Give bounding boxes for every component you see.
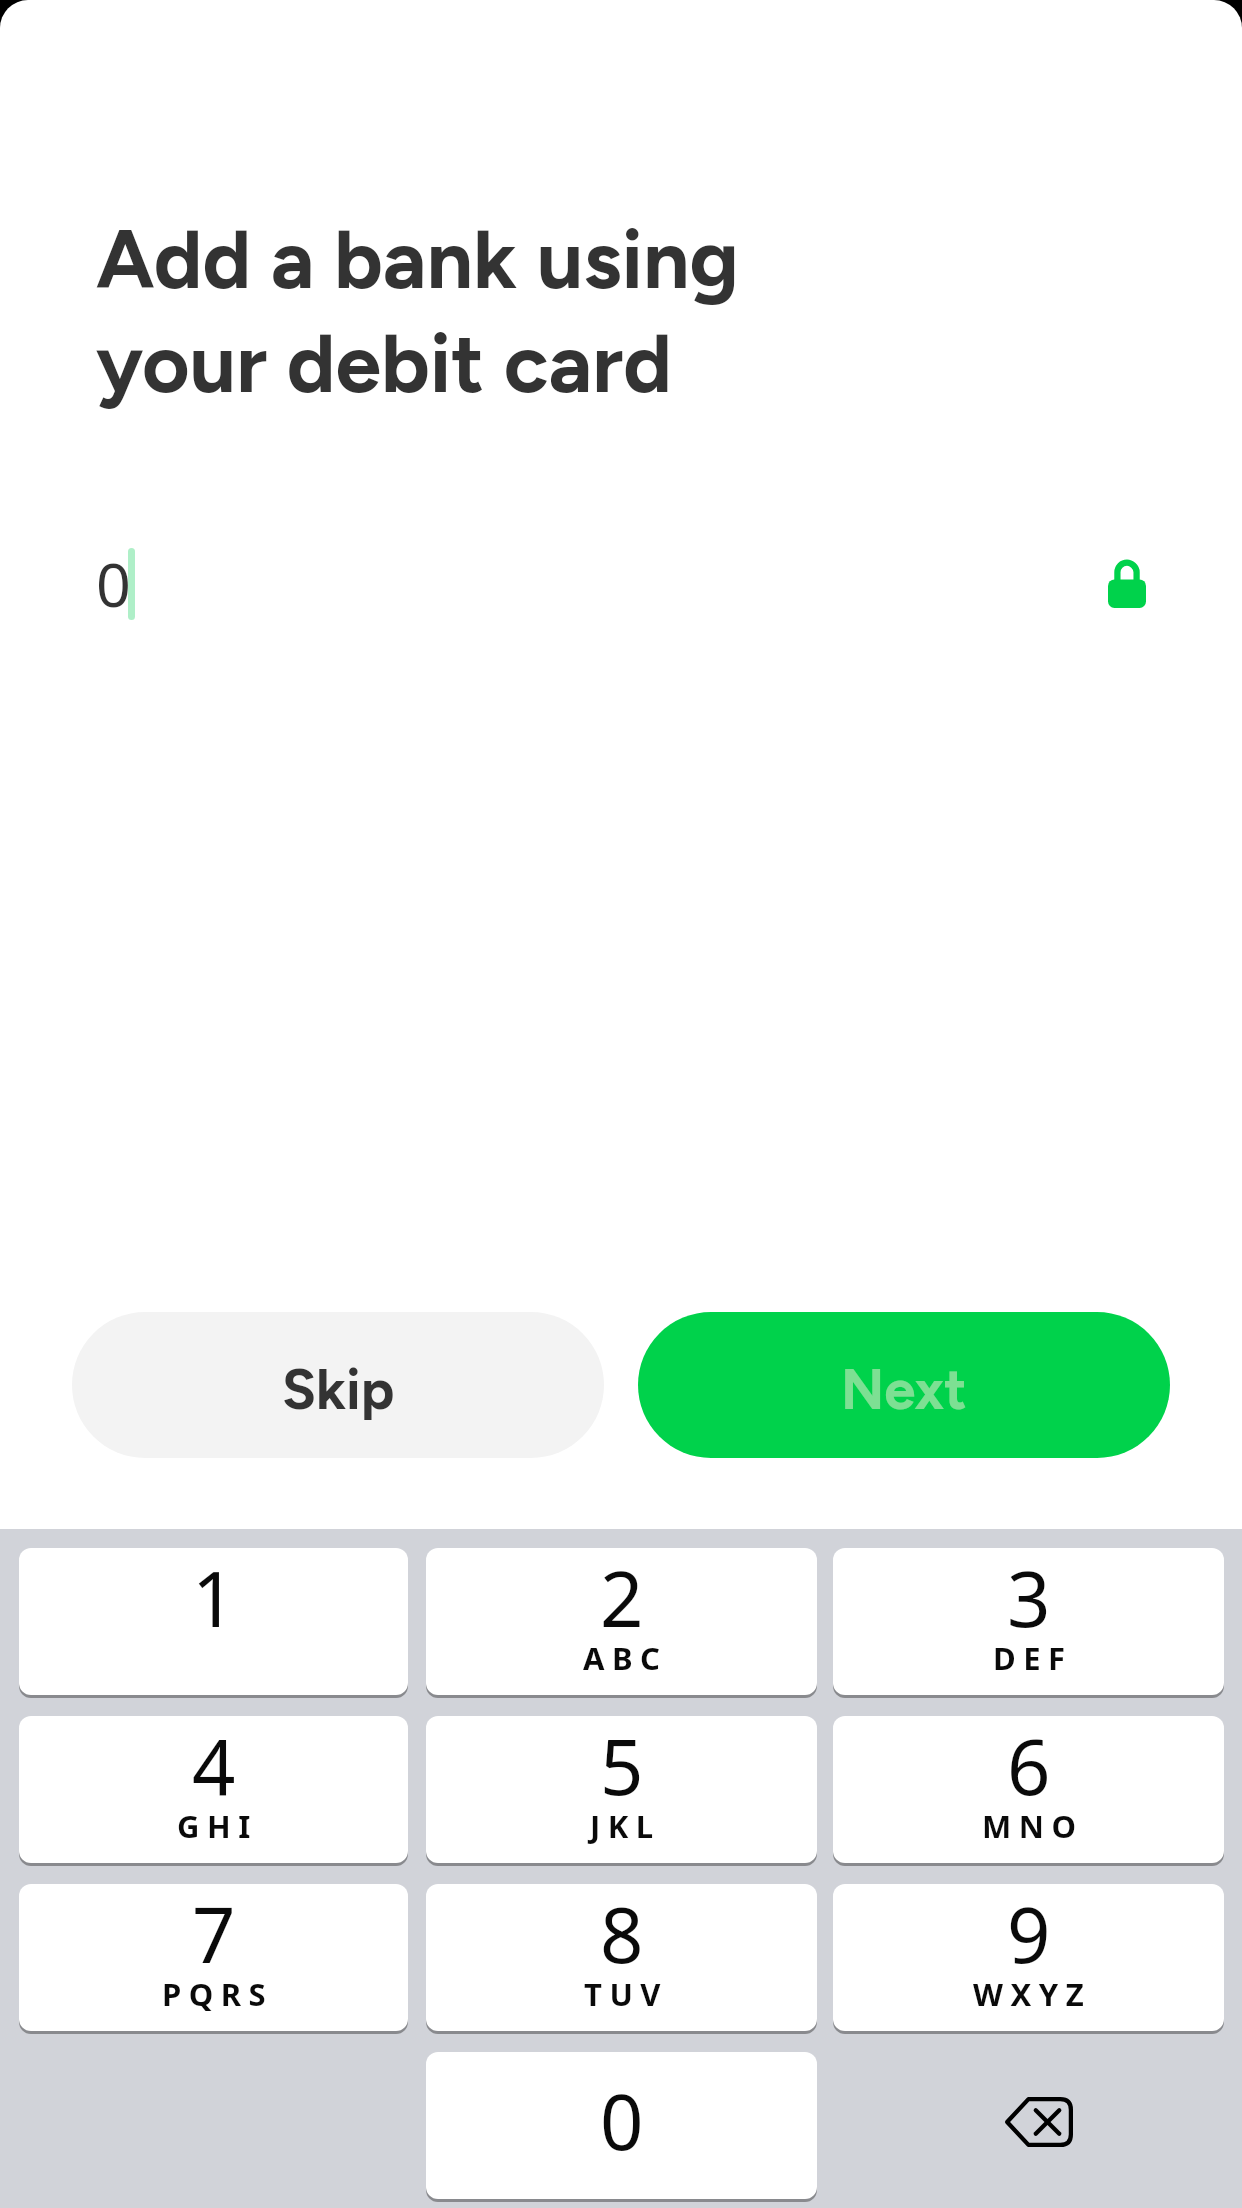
staticText: TUV xyxy=(584,1973,668,2015)
staticText: Skip xyxy=(282,1356,395,1423)
staticText: 4 xyxy=(192,1716,236,1818)
button[interactable]: 8 xyxy=(426,1884,817,2031)
button[interactable]: 5 xyxy=(426,1716,817,1863)
staticText: JKL xyxy=(590,1805,661,1847)
button[interactable]: 3 xyxy=(833,1548,1224,1695)
button[interactable]: 1 xyxy=(19,1548,408,1695)
staticText: GHI xyxy=(177,1805,258,1847)
button[interactable]: 9 xyxy=(833,1884,1224,2031)
staticText: 7 xyxy=(192,1884,236,1986)
button[interactable]: Delete xyxy=(833,2052,1224,2199)
staticText: 0 xyxy=(96,542,131,625)
staticText: 1 xyxy=(192,1548,236,1650)
staticText: 3 xyxy=(1007,1548,1051,1650)
staticText: 5 xyxy=(600,1716,644,1818)
button[interactable]: 2 xyxy=(426,1548,817,1695)
staticText: WXYZ xyxy=(973,1973,1092,2015)
staticText: 8 xyxy=(600,1884,644,1986)
button[interactable]: 4 xyxy=(19,1716,408,1863)
button[interactable]: 0 xyxy=(426,2052,817,2199)
button[interactable]: 7 xyxy=(19,1884,408,2031)
staticText: ABC xyxy=(583,1637,668,1679)
staticText: MNO xyxy=(982,1805,1084,1847)
button[interactable]: Next xyxy=(638,1312,1170,1458)
staticText: 9 xyxy=(1007,1884,1051,1986)
staticText: DEF xyxy=(993,1637,1073,1679)
staticText: Next xyxy=(841,1356,967,1423)
staticText: 2 xyxy=(600,1548,644,1650)
other: Secure connection xyxy=(1108,560,1146,608)
staticText: 0 xyxy=(600,2069,644,2173)
staticText: Add a bank using your debit card xyxy=(96,210,739,413)
button[interactable]: Skip xyxy=(72,1312,604,1458)
staticText: 6 xyxy=(1007,1716,1051,1818)
button[interactable]: 6 xyxy=(833,1716,1224,1863)
staticText: PQRS xyxy=(162,1973,274,2015)
